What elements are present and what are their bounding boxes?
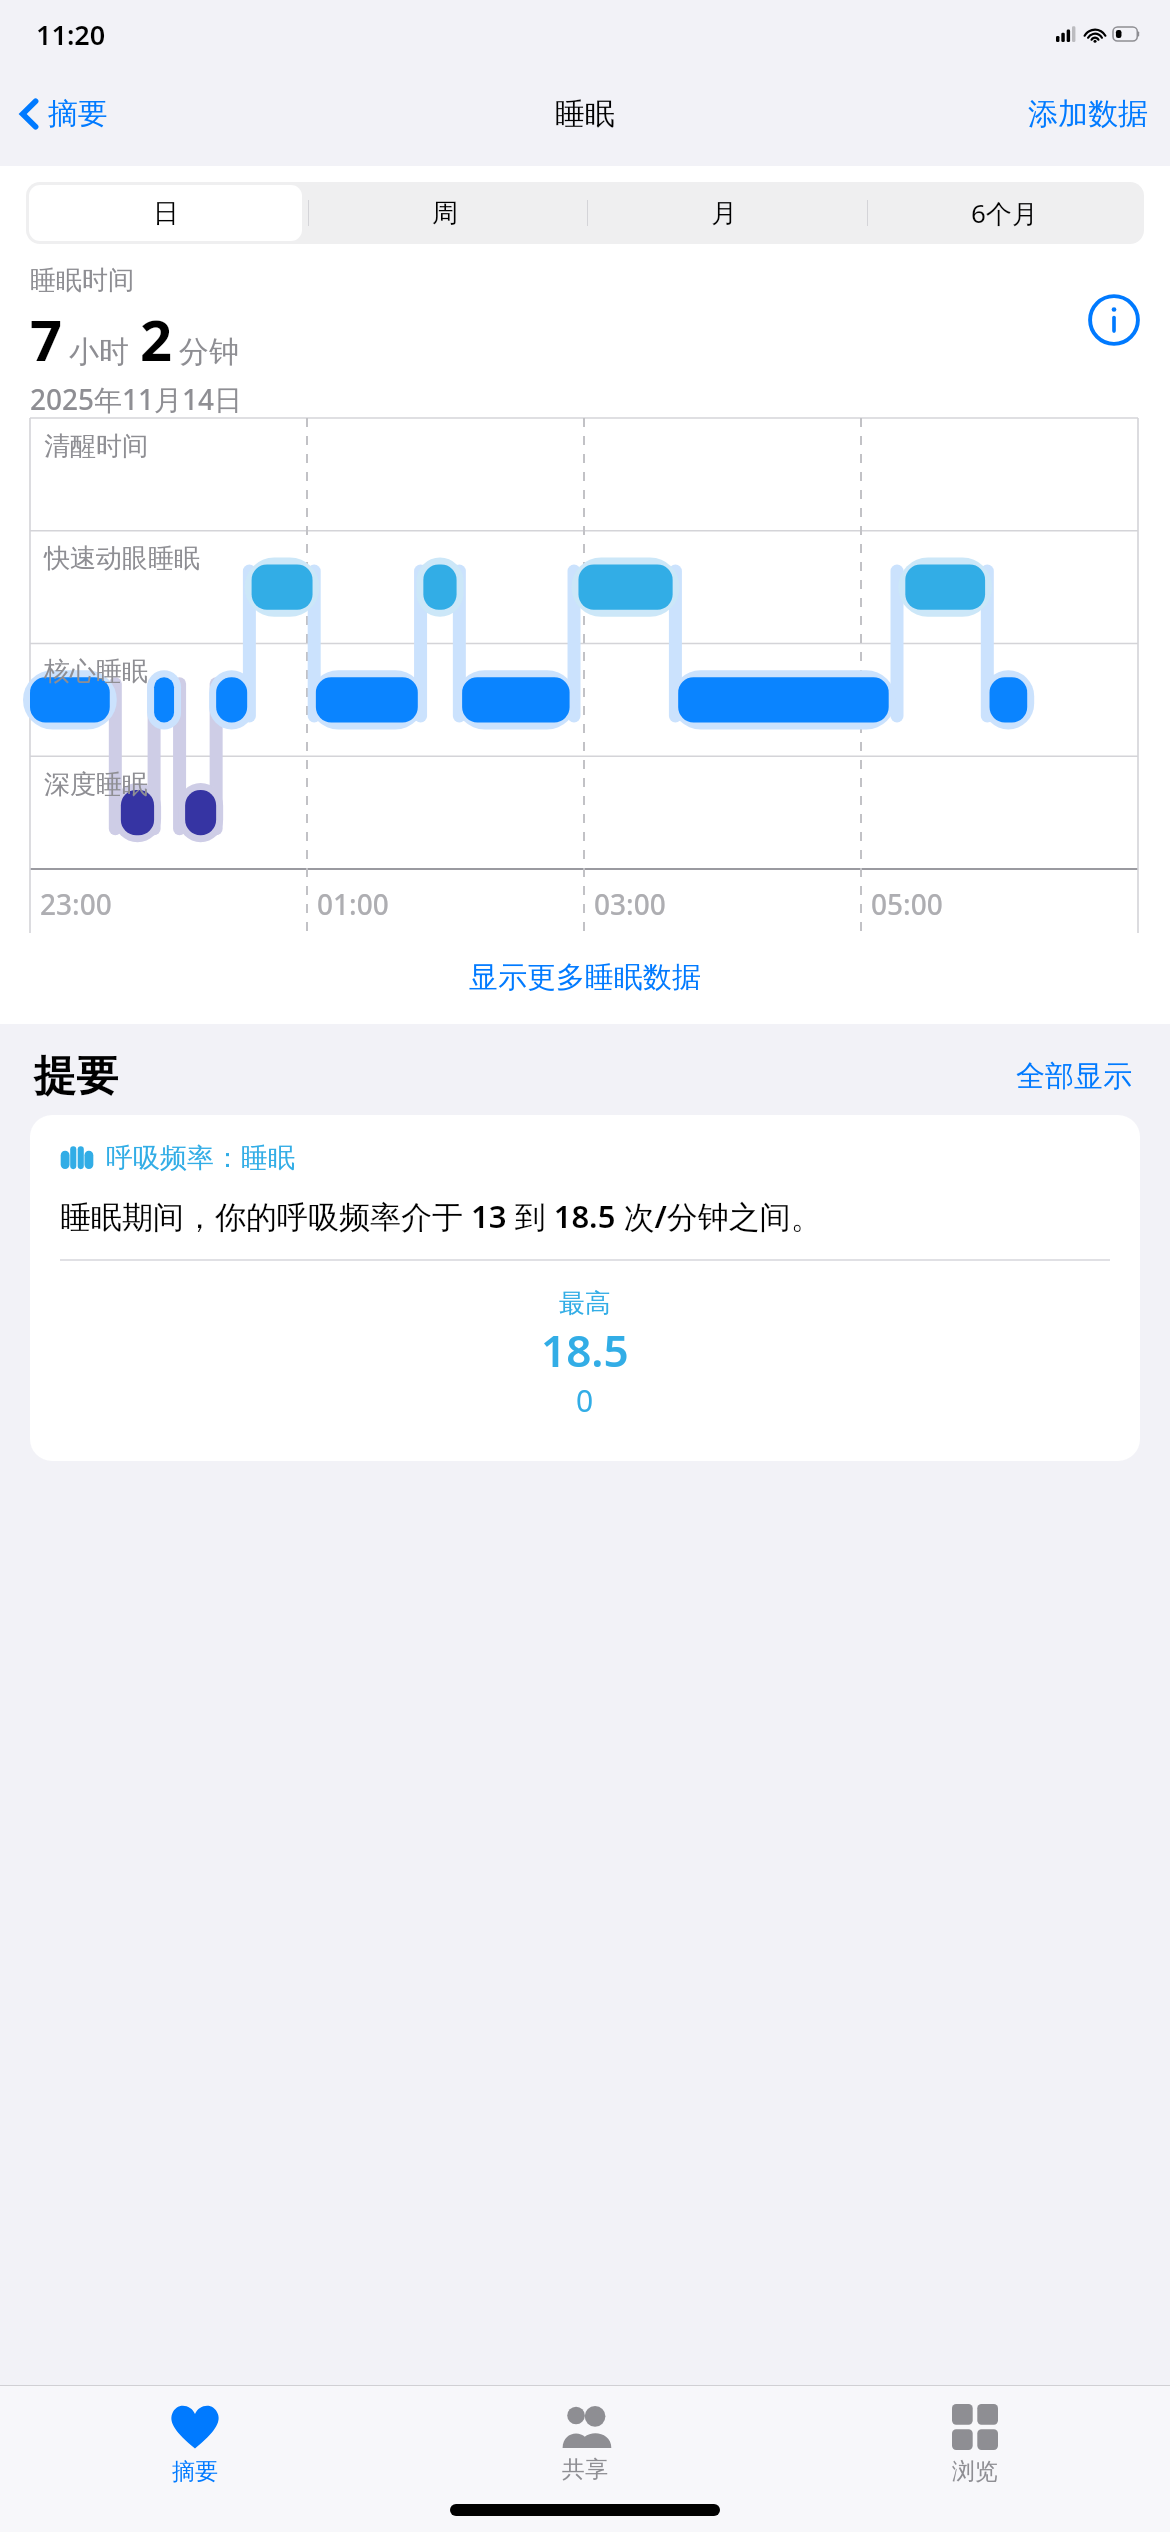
staticText: 18.5 xyxy=(541,1320,629,1380)
staticText: 03:00 xyxy=(594,885,666,923)
button[interactable]: 添加数据 xyxy=(1016,87,1170,141)
button[interactable]: 摘要 xyxy=(0,2400,390,2532)
staticText: 01:00 xyxy=(317,885,389,923)
staticText: 显示更多睡眠数据 xyxy=(469,959,701,996)
button[interactable]: Info xyxy=(1088,294,1140,346)
staticText: 睡眠 xyxy=(555,95,615,133)
staticText: 11:20 xyxy=(36,16,106,53)
staticText: 23:00 xyxy=(40,885,112,923)
staticText: 共享 xyxy=(562,2455,608,2484)
staticText: 月 xyxy=(711,197,737,230)
staticText: 日 xyxy=(153,197,179,230)
staticText: 核心睡眠 xyxy=(44,655,148,688)
button[interactable]: 日 xyxy=(26,182,305,244)
staticText: 深度睡眠 xyxy=(44,768,148,801)
staticText: 摘要 xyxy=(172,2457,218,2486)
button[interactable]: 共享 xyxy=(390,2400,780,2532)
staticText: 分钟 xyxy=(179,333,239,371)
staticText: 清醒时间 xyxy=(44,430,148,463)
button[interactable]: 月 xyxy=(584,182,864,244)
staticText: 6个月 xyxy=(971,195,1038,231)
staticText: 7 xyxy=(30,301,63,377)
staticText: 周 xyxy=(432,197,458,230)
staticText: 呼吸频率：睡眠 xyxy=(106,1141,295,1175)
staticText: 0 xyxy=(576,1380,594,1421)
button[interactable]: 显示更多睡眠数据 xyxy=(0,951,1170,1004)
button[interactable]: 浏览 xyxy=(780,2400,1170,2532)
staticText: 小时 xyxy=(69,333,129,371)
button[interactable]: 6个月 xyxy=(864,182,1144,244)
staticText: 添加数据 xyxy=(1028,95,1148,133)
button[interactable]: 全部显示 xyxy=(1010,1052,1138,1101)
staticText: 快速动眼睡眠 xyxy=(44,542,200,575)
staticText: 2 xyxy=(140,301,173,377)
staticText: 全部显示 xyxy=(1016,1058,1132,1095)
staticText: 浏览 xyxy=(952,2457,998,2486)
staticText: 睡眠期间，你的呼吸频率介于 13 到 18.5 次/分钟之间。 xyxy=(60,1195,822,1237)
staticText: 摘要 xyxy=(48,95,108,133)
button[interactable]: 周 xyxy=(305,182,584,244)
staticText: 睡眠时间 xyxy=(30,264,134,297)
staticText: 2025年11月14日 xyxy=(30,380,243,418)
staticText: 提要 xyxy=(34,1050,118,1103)
button[interactable]: 摘要 xyxy=(0,87,120,141)
staticText: 最高 xyxy=(559,1287,611,1320)
button[interactable]: 呼吸频率：睡眠 xyxy=(30,1115,1140,1461)
staticText: 05:00 xyxy=(871,885,943,923)
